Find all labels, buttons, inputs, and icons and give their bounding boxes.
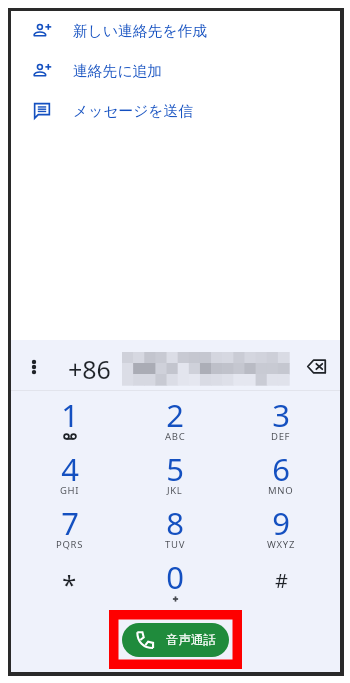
button[interactable]: 6 — [228, 444, 334, 498]
staticText: MNO — [268, 484, 294, 497]
staticText: # — [275, 567, 288, 594]
button[interactable]: 3 — [228, 390, 334, 444]
staticText: 4 — [61, 448, 79, 490]
staticText: 2 — [166, 394, 184, 436]
staticText: 8 — [166, 502, 184, 544]
staticText: * — [62, 566, 77, 601]
staticText: 新しい連絡先を作成 — [73, 22, 208, 41]
button[interactable]: 2 — [122, 390, 228, 444]
button[interactable]: 7 — [17, 498, 122, 552]
button[interactable]: * — [17, 552, 122, 606]
staticText: 音声通話 — [166, 632, 216, 648]
staticText: DEF — [271, 430, 291, 443]
staticText: ABC — [165, 430, 186, 443]
button[interactable]: 連絡先に追加 — [11, 51, 340, 91]
button[interactable]: 8 — [122, 498, 228, 552]
staticText: 5 — [166, 448, 184, 490]
staticText: 7 — [61, 502, 79, 544]
button[interactable]: # — [228, 552, 334, 606]
button[interactable]: 1 — [17, 390, 122, 444]
button[interactable]: 0 — [122, 552, 228, 606]
staticText: 6 — [272, 448, 290, 490]
staticText: JKL — [167, 484, 183, 497]
staticText: 0 — [166, 556, 184, 598]
button[interactable]: メッセージを送信 — [11, 91, 340, 131]
staticText: 9 — [272, 502, 290, 544]
button[interactable]: 9 — [228, 498, 334, 552]
button[interactable]: More options — [18, 351, 50, 383]
button[interactable]: Backspace — [300, 350, 332, 382]
staticText: メッセージを送信 — [73, 102, 194, 121]
button[interactable]: 5 — [122, 444, 228, 498]
staticText: GHI — [60, 484, 80, 497]
button[interactable]: 音声通話 — [122, 623, 229, 657]
staticText: TUV — [165, 538, 186, 551]
staticText: 1 — [61, 394, 79, 436]
button[interactable]: 新しい連絡先を作成 — [11, 11, 340, 51]
staticText: WXYZ — [267, 538, 296, 551]
staticText: PQRS — [56, 538, 84, 551]
staticText: 連絡先に追加 — [73, 62, 163, 81]
staticText: 3 — [272, 394, 290, 436]
staticText: +86 — [68, 352, 111, 386]
button[interactable]: 4 — [17, 444, 122, 498]
